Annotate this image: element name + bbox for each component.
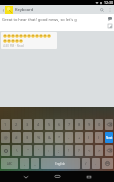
staticText: 6 [58, 122, 61, 127]
staticText: $ [26, 135, 29, 140]
staticText: # [15, 135, 18, 140]
staticText: 1 [4, 122, 7, 127]
staticText: ) [98, 135, 100, 140]
button[interactable]: 1 [1, 119, 10, 130]
staticText: English [55, 162, 66, 166]
button[interactable]: , [20, 158, 29, 169]
button[interactable]: 0 [95, 119, 103, 130]
button[interactable]: \ [12, 145, 21, 156]
staticText: + [78, 135, 81, 140]
button[interactable]: % [34, 132, 43, 143]
staticText: 2 [15, 122, 18, 127]
button[interactable]: Emoji [107, 16, 112, 21]
button[interactable]: ( [85, 132, 93, 143]
staticText: ' [38, 148, 39, 153]
staticText: ; [58, 148, 60, 153]
button[interactable]: Back [1, 8, 5, 12]
button[interactable]: @ [1, 132, 10, 143]
button[interactable]: # [12, 132, 21, 143]
staticText: 3 [26, 122, 29, 127]
button[interactable]: Next [105, 132, 113, 143]
staticText: 5 [48, 122, 51, 127]
button[interactable]: . [92, 158, 100, 169]
button[interactable]: ? [75, 145, 83, 156]
button[interactable]: More options [106, 6, 113, 13]
button[interactable]: $ [23, 132, 32, 143]
staticText: Great to hear that! good news, so let's … [2, 17, 77, 22]
staticText: . [95, 161, 97, 166]
button[interactable]: : [45, 145, 53, 156]
staticText: " [27, 148, 29, 153]
staticText: / [85, 161, 87, 166]
button[interactable]: 8 [75, 119, 83, 130]
staticText: 9 [88, 122, 91, 127]
button[interactable]: 5 [45, 119, 53, 130]
staticText: 7 [68, 122, 71, 127]
button[interactable]: 2 [12, 119, 21, 130]
button[interactable]: * [55, 132, 63, 143]
button[interactable]: 9 [85, 119, 93, 130]
button[interactable]: / [82, 158, 90, 169]
button[interactable]: Recent apps [83, 171, 94, 182]
button[interactable]: ' [34, 145, 43, 156]
button[interactable]: 3 [23, 119, 32, 130]
button[interactable]: < [85, 145, 93, 156]
button[interactable]: App icon [5, 6, 13, 14]
staticText: _ [34, 161, 36, 166]
staticText: & [48, 135, 51, 140]
staticText: 4:30 PM · Read [3, 44, 24, 48]
staticText: ABC [7, 162, 13, 166]
button[interactable]: ) [95, 132, 103, 143]
staticText: 4 [37, 122, 40, 127]
staticText: ? [78, 148, 80, 153]
staticText: * [58, 135, 61, 140]
button[interactable]: & [45, 132, 53, 143]
button[interactable]: ABC [1, 158, 18, 169]
button[interactable] [1, 145, 10, 156]
staticText: % [37, 135, 41, 140]
staticText: , [24, 161, 26, 166]
button[interactable] [102, 158, 113, 169]
staticText: 0 [98, 122, 101, 127]
staticText: - [68, 135, 70, 140]
button[interactable]: 4 [34, 119, 43, 130]
button[interactable]: 6 [55, 119, 63, 130]
button[interactable]: " [23, 145, 32, 156]
staticText: Keyboard [15, 7, 34, 12]
button[interactable]: ; [55, 145, 63, 156]
button[interactable] [105, 145, 113, 156]
staticText: ( [88, 135, 90, 140]
staticText: < [88, 148, 91, 153]
button[interactable]: Search [97, 5, 106, 14]
button[interactable]: + [75, 132, 83, 143]
staticText: > [98, 148, 101, 153]
button[interactable] [105, 119, 113, 130]
staticText: Next [106, 136, 113, 140]
button[interactable]: Expand [107, 23, 112, 28]
staticText: : [48, 148, 50, 153]
staticText: \ [16, 148, 18, 153]
staticText: @ [4, 135, 8, 140]
staticText: 8 [78, 122, 81, 127]
button[interactable]: ! [65, 145, 73, 156]
button[interactable]: English [41, 158, 80, 169]
button[interactable]: Back [20, 171, 31, 182]
button[interactable]: 7 [65, 119, 73, 130]
button[interactable]: - [65, 132, 73, 143]
button[interactable]: > [95, 145, 103, 156]
button[interactable]: Home [52, 171, 63, 182]
staticText: 12:30 [104, 0, 113, 5]
button[interactable]: _ [31, 158, 39, 169]
staticText: ! [68, 148, 70, 153]
